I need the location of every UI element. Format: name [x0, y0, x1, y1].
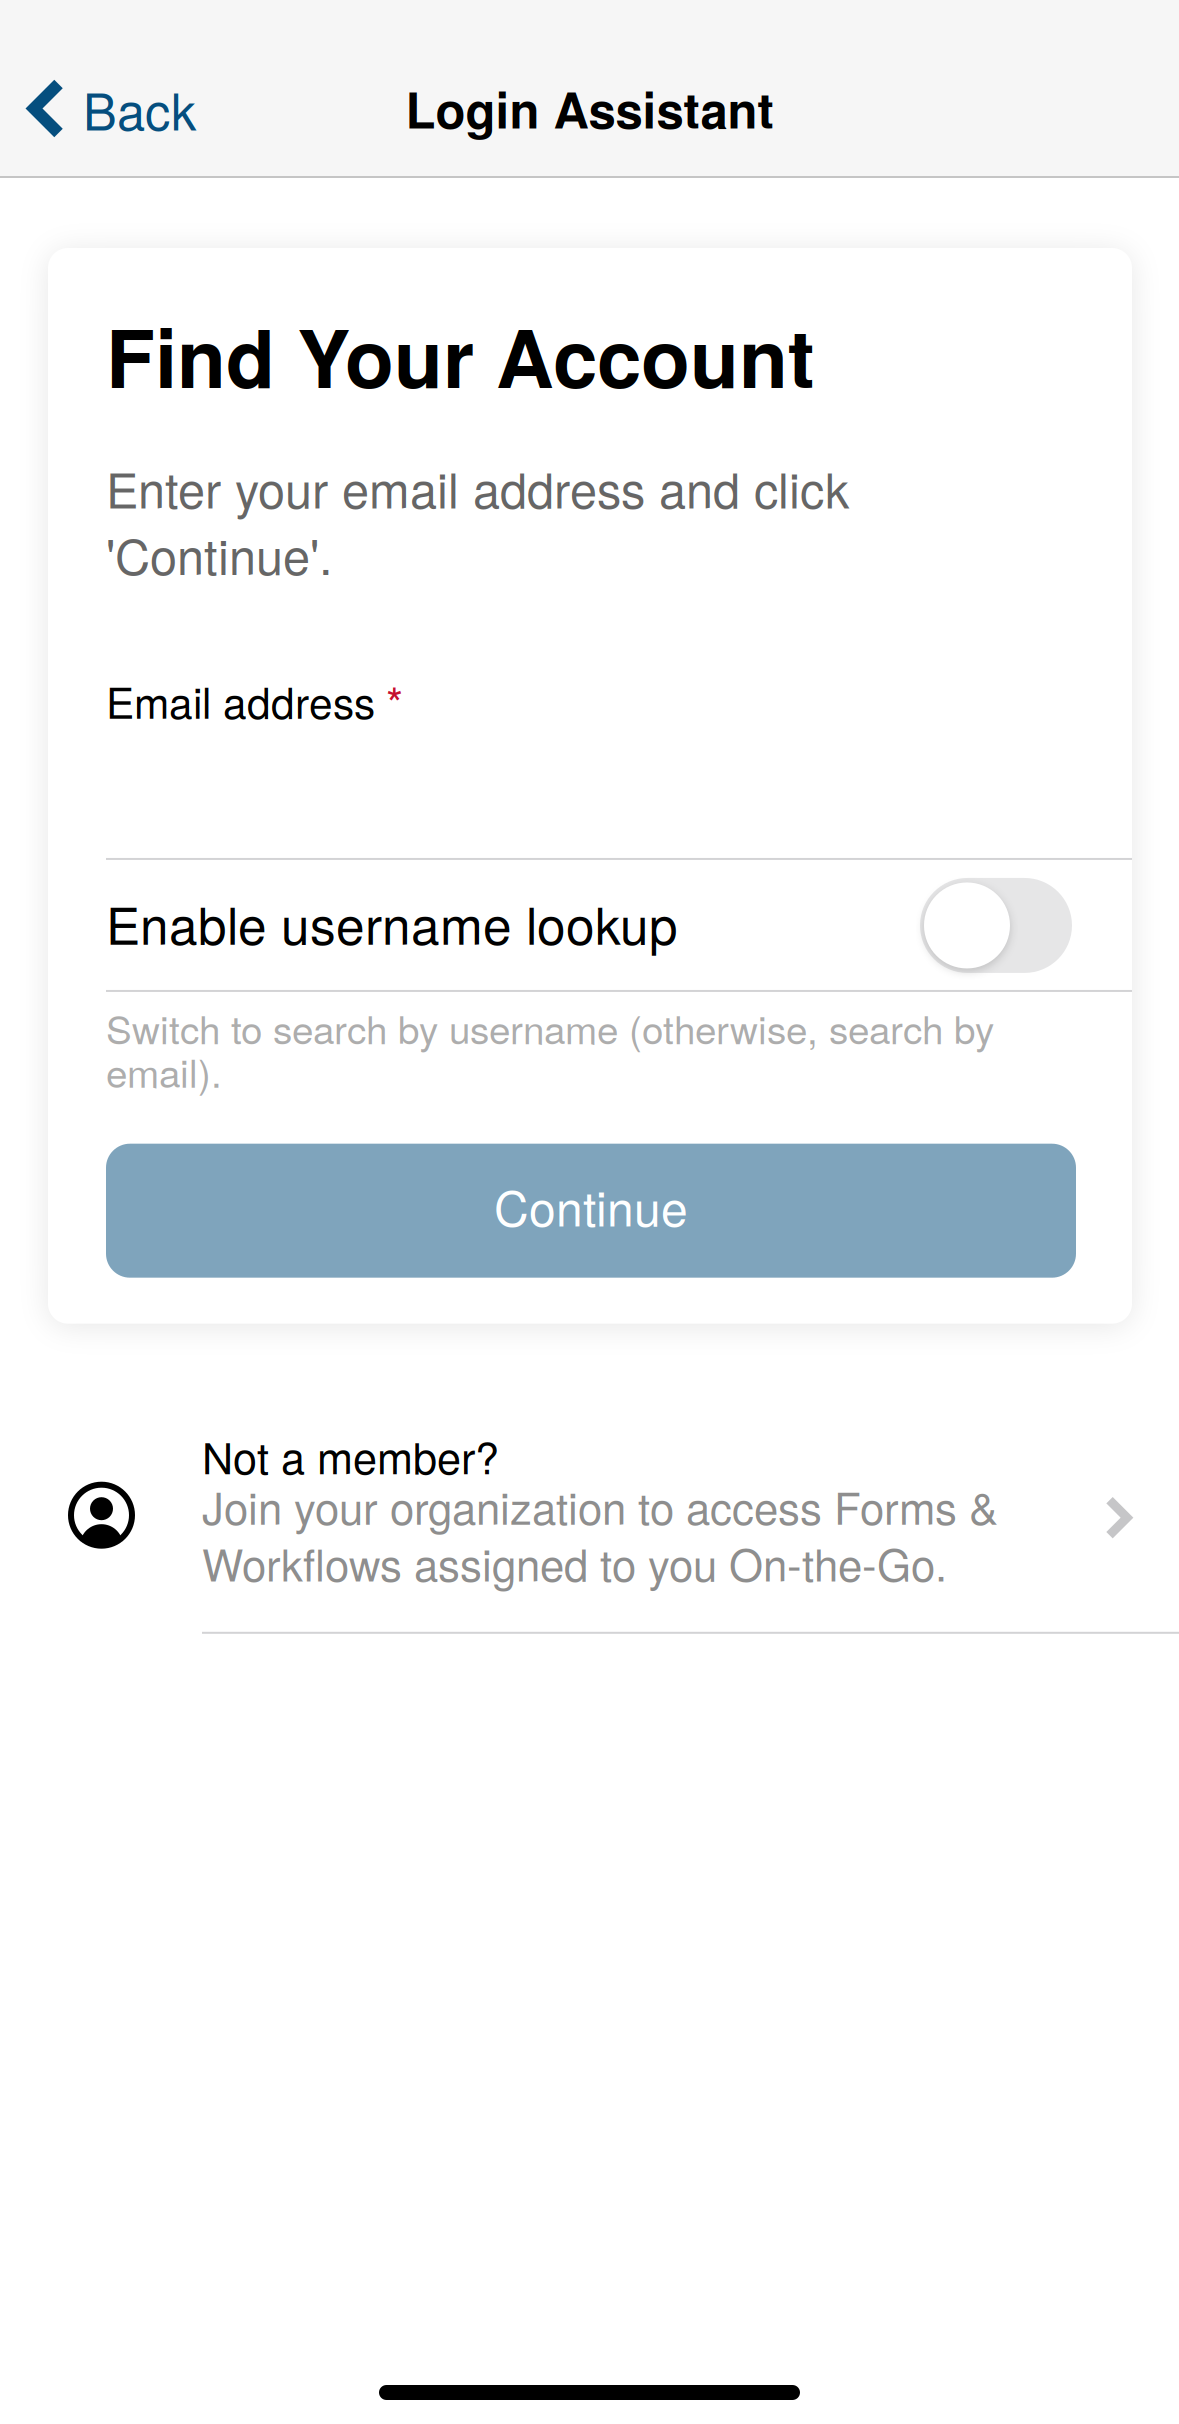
staticText: Continue — [494, 1171, 688, 1240]
staticText: Find Your Account — [106, 298, 815, 413]
staticText: Enter your email address and click 'Cont… — [106, 453, 849, 589]
staticText: * — [386, 669, 403, 732]
button[interactable]: Not a member? — [0, 1425, 1179, 1634]
button[interactable]: Continue — [106, 1144, 1076, 1278]
staticText: Join your organization to access Forms &… — [202, 1475, 998, 1594]
button[interactable]: Enable username lookup — [106, 860, 1076, 990]
staticText: Email address — [106, 670, 375, 731]
staticText: Switch to search by username (otherwise,… — [106, 1000, 994, 1099]
staticText: Not a member? — [202, 1425, 499, 1487]
staticText: Back — [83, 72, 196, 145]
staticText: Login Assistant — [405, 73, 773, 144]
staticText: Enable username lookup — [106, 886, 678, 959]
button[interactable]: Back — [0, 0, 390, 178]
